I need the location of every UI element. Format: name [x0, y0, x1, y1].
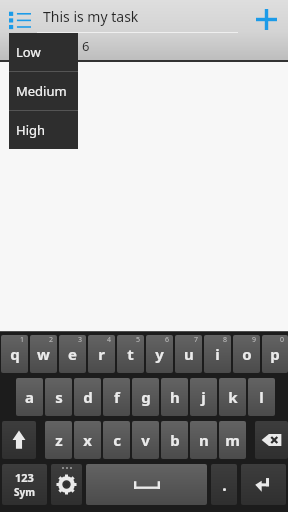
button[interactable]: g [132, 378, 159, 416]
button[interactable]: w [30, 335, 57, 373]
staticText: r [98, 344, 105, 364]
button[interactable]: u [175, 335, 202, 373]
button[interactable]: Shift [2, 421, 36, 459]
button[interactable]: Space [86, 464, 207, 505]
staticText: u [184, 344, 194, 364]
staticText: s [55, 387, 63, 407]
button[interactable]: m [219, 421, 246, 459]
staticText: w [37, 344, 50, 364]
button[interactable]: t [117, 335, 144, 373]
button[interactable]: List options [5, 4, 35, 34]
button[interactable]: f [103, 378, 130, 416]
button[interactable]: 123 [2, 464, 47, 505]
staticText: 123 [15, 470, 34, 485]
staticText: This is my task [43, 7, 139, 26]
button[interactable]: l [248, 378, 275, 416]
button[interactable]: n [190, 421, 217, 459]
staticText: 6 [82, 37, 90, 55]
staticText: e [68, 344, 77, 364]
button[interactable]: Add task [244, 0, 288, 38]
staticText: q [10, 344, 20, 364]
button[interactable]: Enter [241, 464, 286, 505]
button[interactable]: Backspace [255, 421, 288, 459]
button[interactable]: Settings [51, 464, 82, 505]
staticText: Sym [14, 485, 35, 499]
button[interactable]: Medium [9, 72, 78, 110]
staticText: a [25, 387, 34, 407]
staticText: v [141, 430, 150, 450]
button[interactable]: p [262, 335, 288, 373]
button[interactable]: s [45, 378, 72, 416]
button[interactable]: z [45, 421, 72, 459]
button[interactable]: . [211, 464, 237, 505]
button[interactable]: r [88, 335, 115, 373]
staticText: i [215, 344, 220, 364]
button[interactable]: i [204, 335, 231, 373]
staticText: 0 [280, 335, 285, 345]
staticText: 6 [165, 335, 170, 345]
button[interactable]: This is my task [35, 0, 244, 38]
button[interactable]: y [146, 335, 173, 373]
staticText: n [199, 430, 209, 450]
staticText: h [170, 387, 180, 407]
staticText: p [270, 344, 280, 364]
staticText: b [170, 430, 180, 450]
staticText: f [114, 387, 120, 407]
button[interactable]: x [74, 421, 101, 459]
staticText: d [83, 387, 93, 407]
button[interactable]: a [16, 378, 43, 416]
button[interactable]: c [103, 421, 130, 459]
button[interactable]: v [132, 421, 159, 459]
staticText: l [259, 387, 264, 407]
staticText: 1 [20, 335, 25, 345]
button[interactable]: b [161, 421, 188, 459]
button[interactable]: k [219, 378, 246, 416]
button[interactable]: Low [9, 33, 78, 71]
button[interactable]: e [59, 335, 86, 373]
staticText: 8 [223, 335, 228, 345]
staticText: Medium [16, 82, 67, 100]
button[interactable]: d [74, 378, 101, 416]
button[interactable]: q [1, 335, 28, 373]
button[interactable]: h [161, 378, 188, 416]
staticText: y [155, 344, 164, 364]
staticText: g [141, 387, 151, 407]
button[interactable]: High [9, 111, 78, 149]
staticText: Low [16, 43, 41, 61]
staticText: x [83, 430, 92, 450]
staticText: m [225, 430, 240, 450]
button[interactable]: o [233, 335, 260, 373]
staticText: c [113, 430, 121, 450]
staticText: 7 [194, 335, 199, 345]
staticText: 2 [49, 335, 54, 345]
staticText: k [228, 387, 238, 407]
staticText: . [222, 474, 227, 496]
button[interactable]: j [190, 378, 217, 416]
staticText: 9 [252, 335, 257, 345]
staticText: z [55, 430, 63, 450]
staticText: 4 [107, 335, 112, 345]
staticText: High [16, 121, 46, 139]
staticText: 3 [78, 335, 83, 345]
staticText: o [242, 344, 252, 364]
staticText: j [201, 387, 206, 407]
staticText: t [127, 344, 134, 364]
staticText: 5 [136, 335, 141, 345]
